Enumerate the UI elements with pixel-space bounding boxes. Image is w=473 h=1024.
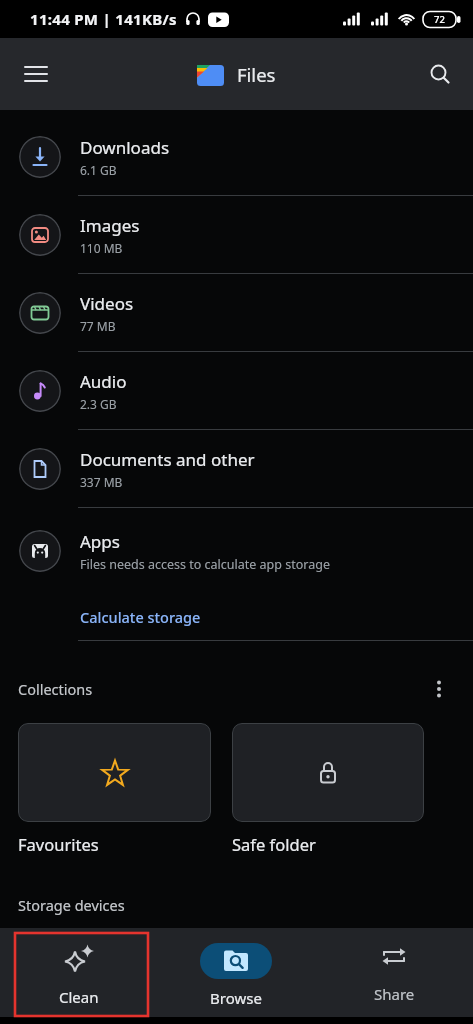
staticText: Files needs access to calculate app stor… bbox=[80, 556, 330, 573]
button[interactable]: Audio bbox=[0, 352, 473, 430]
staticText: Images bbox=[80, 214, 140, 237]
staticText: 337 MB bbox=[80, 474, 123, 490]
button[interactable] bbox=[421, 55, 459, 93]
staticText: Collections bbox=[18, 679, 93, 699]
staticText: Downloads bbox=[80, 136, 170, 159]
staticText: Clean bbox=[59, 987, 99, 1007]
staticText: 72 bbox=[434, 13, 445, 26]
button[interactable]: Apps bbox=[0, 508, 473, 594]
button[interactable]: Videos bbox=[0, 274, 473, 352]
staticText: Safe folder bbox=[232, 833, 316, 855]
button[interactable]: Share bbox=[315, 928, 473, 1017]
staticText: 110 MB bbox=[80, 240, 123, 256]
staticText: 6.1 GB bbox=[80, 162, 117, 178]
button[interactable]: Downloads bbox=[0, 118, 473, 196]
staticText: 11:44 PM | 141KB/s bbox=[30, 9, 177, 29]
button[interactable]: Documents and other bbox=[0, 430, 473, 508]
button[interactable]: Browse bbox=[157, 928, 315, 1017]
button[interactable] bbox=[16, 54, 56, 94]
button[interactable]: Calculate storage bbox=[0, 594, 473, 640]
staticText: Documents and other bbox=[80, 448, 255, 471]
staticText: Favourites bbox=[18, 833, 99, 855]
button[interactable] bbox=[18, 723, 211, 822]
staticText: 77 MB bbox=[80, 318, 116, 334]
staticText: Videos bbox=[80, 292, 134, 315]
staticText: Apps bbox=[80, 530, 120, 553]
staticText: Calculate storage bbox=[80, 607, 201, 627]
button[interactable] bbox=[232, 723, 424, 822]
staticText: Browse bbox=[210, 988, 262, 1008]
staticText: Share bbox=[374, 984, 415, 1004]
staticText: Files bbox=[237, 62, 276, 87]
button[interactable] bbox=[429, 679, 449, 699]
staticText: Audio bbox=[80, 370, 127, 393]
button[interactable]: Clean bbox=[0, 928, 157, 1017]
button[interactable]: Images bbox=[0, 196, 473, 274]
staticText: 2.3 GB bbox=[80, 396, 117, 412]
staticText: Storage devices bbox=[18, 895, 125, 915]
